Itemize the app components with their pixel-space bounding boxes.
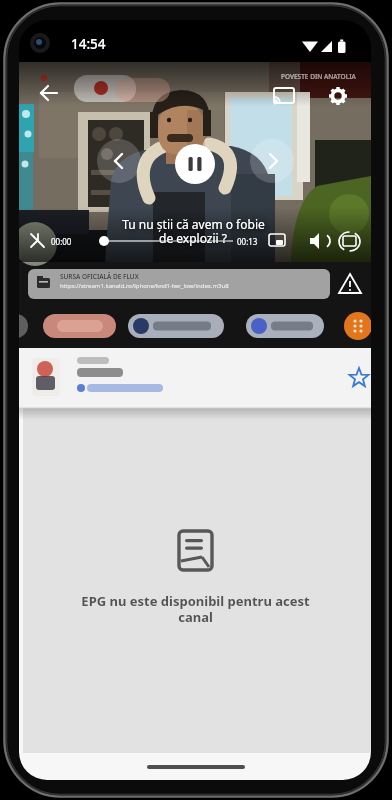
button[interactable] — [341, 190, 361, 210]
button[interactable] — [325, 82, 349, 106]
button[interactable] — [101, 140, 143, 182]
button[interactable] — [271, 82, 295, 106]
button[interactable] — [19, 348, 371, 428]
button[interactable] — [43, 314, 117, 338]
button[interactable] — [270, 190, 288, 208]
button[interactable] — [251, 140, 293, 182]
button[interactable] — [344, 312, 371, 342]
staticText: 00:00 — [51, 236, 72, 247]
button[interactable] — [310, 190, 328, 208]
button[interactable] — [349, 368, 371, 390]
staticText: 00:13 — [237, 236, 258, 247]
staticText: de explozii ? — [159, 230, 227, 246]
button[interactable] — [339, 270, 365, 298]
staticText: SURSA OFICIALĂ DE FLUX — [60, 272, 139, 281]
staticText: 14:54 — [71, 35, 106, 53]
button[interactable] — [128, 314, 224, 338]
button[interactable] — [35, 80, 61, 106]
staticText: https://stream1.kanald.ro/iphone/knd1-lw… — [60, 282, 229, 290]
staticText: EPG nu este disponibil pentru acest cana… — [81, 592, 310, 626]
button[interactable] — [246, 314, 324, 338]
staticText: POVESTE DIN ANATOLIA — [281, 72, 356, 81]
button[interactable] — [28, 269, 330, 299]
button[interactable] — [174, 142, 216, 184]
staticText: Tu nu știi că avem o fobie — [122, 216, 265, 232]
